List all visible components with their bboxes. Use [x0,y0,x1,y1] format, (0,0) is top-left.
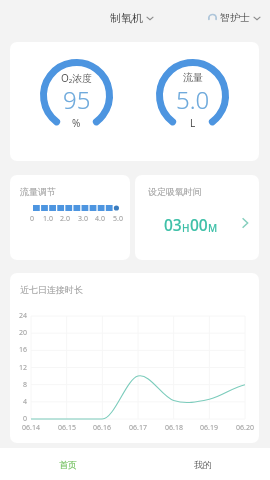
staticText: 06.19 [200,423,218,433]
staticText: 我的 [194,459,212,470]
staticText: 4 [23,397,28,407]
staticText: 近七日连接时长 [20,284,83,295]
staticText: 5.0 [176,83,210,116]
button[interactable]: 首页 [0,448,135,480]
button[interactable]: 0 [18,201,122,229]
button[interactable]: 我的 [135,448,270,480]
staticText: 流量调节 [20,186,56,197]
staticText: 20 [19,328,28,338]
staticText: 3.0 [78,214,88,224]
staticText: 8 [23,380,28,390]
staticText: L [190,116,196,130]
staticText: 设定吸氧时间 [148,186,202,197]
staticText: 0 [30,214,35,224]
staticText: 06.15 [58,423,76,433]
staticText: O₂浓度 [61,71,93,85]
staticText: 1.0 [43,214,53,224]
staticText: 03 [164,214,182,235]
staticText: 12 [19,363,28,373]
staticText: 16 [19,345,28,355]
staticText: 5.0 [113,214,123,224]
button[interactable]: 制氧机 [107,8,157,28]
staticText: 06.14 [22,423,40,433]
staticText: 智护士 [220,11,250,24]
staticText: 流量 [183,71,203,84]
button[interactable]: 设定吸氧时间 [135,175,259,260]
staticText: 4.0 [95,214,105,224]
staticText: 06.17 [129,423,147,433]
staticText: 00 [190,214,208,235]
staticText: 95 [63,83,91,116]
staticText: % [72,116,81,130]
other: 智护士 [208,13,217,22]
staticText: 首页 [59,459,77,470]
staticText: M [208,221,218,235]
staticText: 06.18 [165,423,183,433]
staticText: 06.16 [93,423,111,433]
staticText: 制氧机 [110,11,143,25]
staticText: 24 [19,311,28,321]
staticText: 0 [23,414,28,424]
staticText: H [182,221,190,235]
staticText: 2.0 [60,214,70,224]
staticText: 06.20 [236,423,254,433]
button[interactable]: 智护士 [205,8,264,27]
